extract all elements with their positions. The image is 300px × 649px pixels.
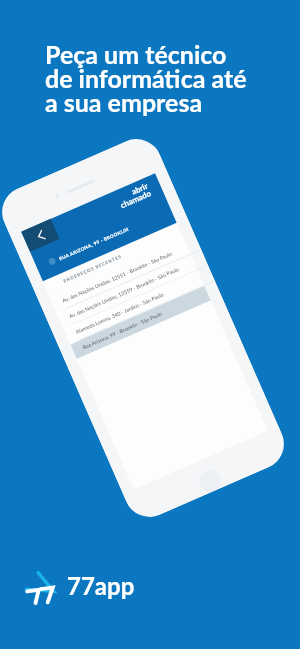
staticText: Peça um técnico de informática até a sua… — [45, 39, 247, 117]
button[interactable]: Back — [21, 219, 59, 252]
staticText: Alameda Lorena, 340 - Jardins - São Paul… — [75, 291, 165, 335]
button[interactable]: Alameda Lorena, 340 - Jardins - São Paul… — [64, 270, 204, 343]
button[interactable]: Rua Arizona, 99 - Brooklin - São Paulo — [70, 286, 211, 359]
staticText: Rua Arizona, 99 - Brooklin - São Paulo — [82, 310, 164, 350]
staticText: 77app — [67, 571, 135, 600]
staticText: Av. das Nações Unidas, 12551 - Brooklin … — [61, 250, 174, 304]
staticText: RUA ARIZONA, 99 - BROOKLIN — [58, 226, 130, 261]
button[interactable]: Av. das Nações Unidas, 12559 - Brooklin … — [57, 255, 197, 328]
button[interactable]: Av. das Nações Unidas, 12551 - Brooklin … — [50, 239, 190, 312]
other: 77app — [24, 571, 56, 604]
button[interactable]: 77app — [24, 571, 135, 604]
staticText: ENDEREÇOS RECENTES — [63, 254, 122, 284]
staticText: Av. das Nações Unidas, 12559 - Brooklin … — [68, 266, 180, 319]
staticText: abrir chamado — [115, 181, 152, 210]
button[interactable]: Home — [195, 466, 224, 495]
